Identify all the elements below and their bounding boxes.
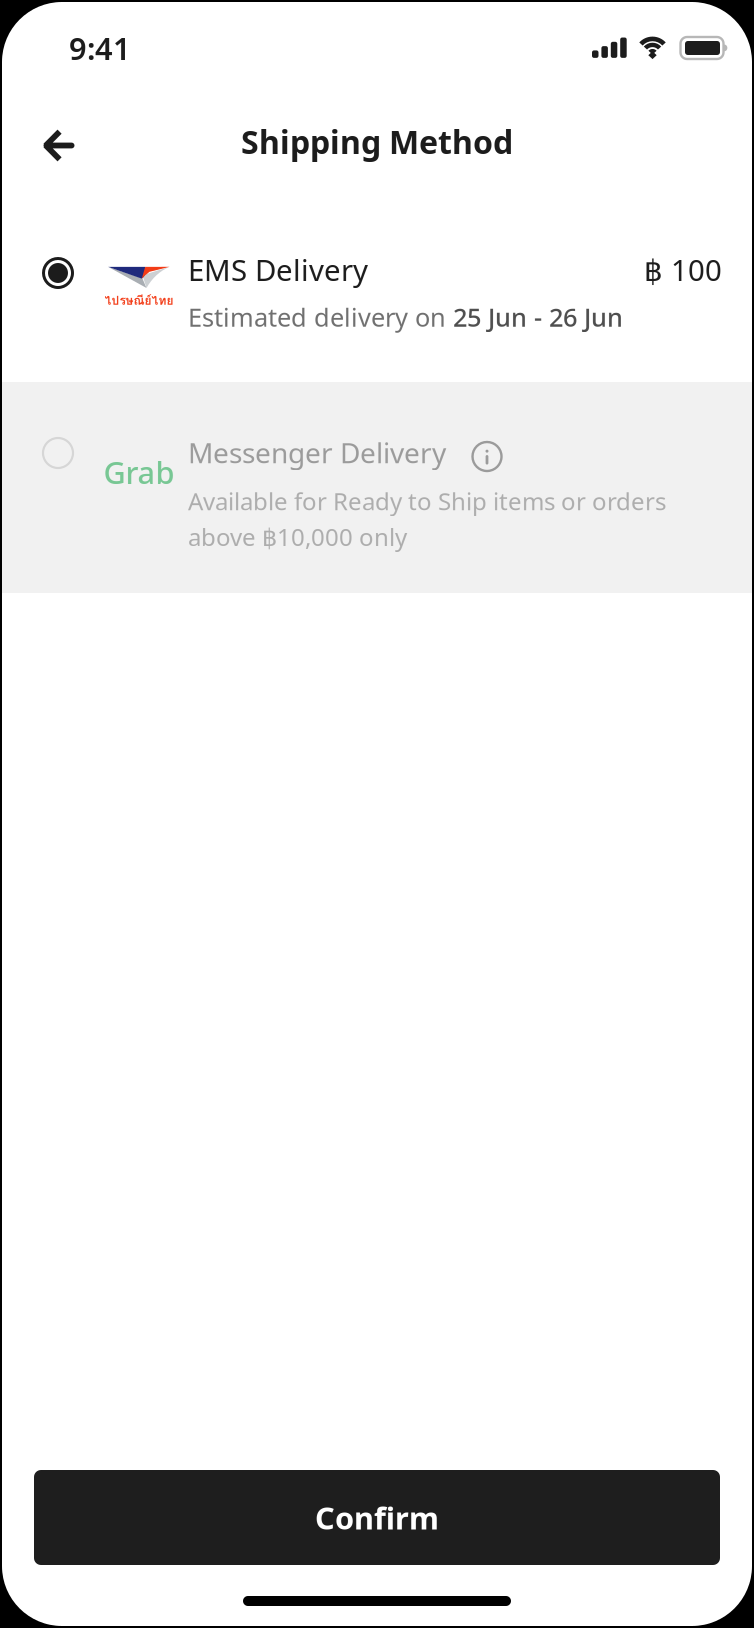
staticText: Available for Ready to Ship items or ord… xyxy=(188,485,666,517)
button[interactable]: Grab xyxy=(2,382,752,593)
staticText: Grab xyxy=(103,452,174,492)
staticText: Messenger Delivery xyxy=(188,434,446,471)
staticText: Shipping Method xyxy=(241,120,513,163)
staticText: ไปรษณีย์ไทย xyxy=(104,291,173,310)
staticText: 9:41 xyxy=(69,28,131,68)
staticText: Confirm xyxy=(315,1497,439,1538)
button[interactable]: ไปรษณีย์ไทย xyxy=(2,213,752,382)
button[interactable]: Back xyxy=(27,104,91,168)
staticText: above ฿10,000 only xyxy=(188,521,407,553)
staticText: 25 Jun - 26 Jun xyxy=(453,300,623,334)
button[interactable]: Confirm xyxy=(34,1470,720,1565)
staticText: ฿ 100 xyxy=(644,250,722,289)
staticText: Estimated delivery on xyxy=(188,300,453,334)
staticText: EMS Delivery xyxy=(188,250,368,289)
